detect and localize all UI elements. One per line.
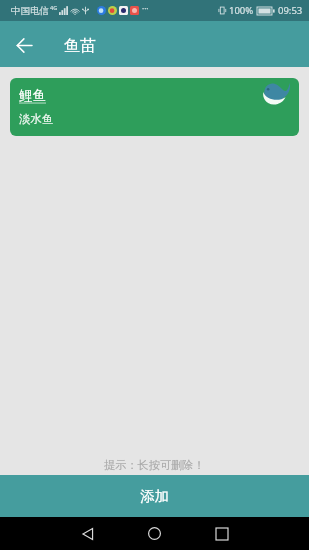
button[interactable]: Recents bbox=[205, 517, 238, 550]
staticText: 中国电信 bbox=[11, 5, 49, 17]
staticText: 鱼苗 bbox=[64, 36, 96, 56]
staticText: ··· bbox=[142, 3, 149, 14]
staticText: 4G bbox=[50, 4, 58, 11]
button[interactable]: 添加 bbox=[0, 475, 309, 517]
staticText: 添加 bbox=[140, 487, 169, 505]
staticText: 100% bbox=[229, 4, 254, 17]
staticText: 鲤鱼 bbox=[19, 87, 46, 104]
button[interactable]: Back bbox=[0, 21, 46, 67]
staticText: 提示：长按可删除！ bbox=[104, 458, 205, 472]
staticText: 09:53 bbox=[278, 4, 303, 17]
button[interactable]: Back bbox=[71, 517, 104, 550]
staticText: 淡水鱼 bbox=[19, 112, 54, 126]
button[interactable]: 鲤鱼 bbox=[10, 78, 299, 136]
button[interactable]: Home bbox=[138, 517, 171, 550]
